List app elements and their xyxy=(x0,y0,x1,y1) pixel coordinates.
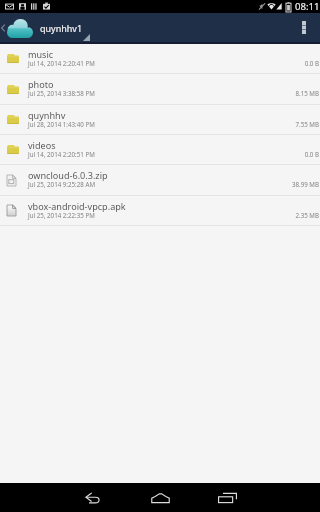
staticText: Jul 14, 2014 2:20:51 PM xyxy=(28,150,95,158)
staticText: 8.15 MB xyxy=(295,89,319,97)
button[interactable]: Back xyxy=(60,483,127,512)
staticText: Jul 14, 2014 2:20:41 PM xyxy=(28,59,95,67)
button[interactable]: owncloud-6.0.3.zip xyxy=(0,165,320,196)
staticText: 0.0 B xyxy=(304,59,319,67)
staticText: videos xyxy=(28,139,56,151)
staticText: vbox-android-vpcp.apk xyxy=(28,200,126,212)
button[interactable]: music xyxy=(0,44,320,74)
button[interactable]: Home xyxy=(127,483,194,512)
staticText: Jul 25, 2014 2:22:35 PM xyxy=(28,211,95,219)
staticText: Jul 28, 2014 1:43:40 PM xyxy=(28,120,95,128)
staticText: 38.99 MB xyxy=(291,180,319,188)
button[interactable]: More options xyxy=(287,13,320,42)
staticText: music xyxy=(28,48,54,60)
staticText: quynhhv1 xyxy=(40,22,83,34)
button[interactable]: vbox-android-vpcp.apk xyxy=(0,196,320,226)
button[interactable]: photo xyxy=(0,74,320,105)
staticText: 0.0 B xyxy=(304,150,319,158)
button[interactable]: quynhhv xyxy=(0,105,320,135)
button[interactable]: Recent apps xyxy=(194,483,261,512)
staticText: Jul 25, 2014 9:25:28 AM xyxy=(28,180,96,188)
button[interactable]: videos xyxy=(0,135,320,165)
staticText: owncloud-6.0.3.zip xyxy=(28,169,108,181)
staticText: 08:11 xyxy=(295,0,320,13)
staticText: quynhhv xyxy=(28,109,66,121)
button[interactable]: Up xyxy=(0,13,33,42)
staticText: 7.55 MB xyxy=(295,120,319,128)
staticText: photo xyxy=(28,78,54,90)
staticText: Jul 25, 2014 3:38:58 PM xyxy=(28,89,95,97)
staticText: 2.35 MB xyxy=(295,211,319,219)
